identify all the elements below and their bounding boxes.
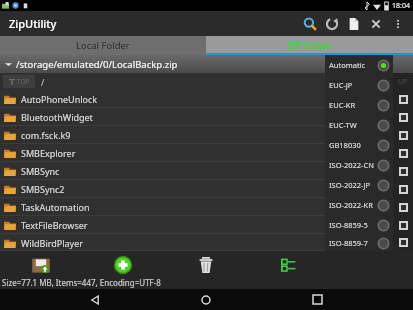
button[interactable]: ISO-8859-7 bbox=[329, 235, 393, 251]
button[interactable]: Automatic bbox=[329, 55, 393, 75]
staticText: ISO-2022-JP bbox=[329, 180, 377, 190]
staticText: ZipUtility bbox=[9, 16, 57, 31]
staticText: GB18030 bbox=[329, 140, 377, 150]
staticText: AutoPhoneUnlock bbox=[21, 93, 98, 105]
button[interactable]: EUC-JP bbox=[329, 75, 393, 95]
button[interactable]: TextFileBrowser bbox=[0, 216, 325, 234]
button[interactable]: SMBSync bbox=[0, 162, 325, 180]
button[interactable]: ISO-2022-JP bbox=[329, 175, 393, 195]
button[interactable]: More options bbox=[387, 13, 409, 35]
staticText: /storage/emulated/0/LocalBackp.zip bbox=[16, 58, 178, 71]
staticText: SMBExplorer bbox=[21, 147, 76, 159]
button[interactable]: EUC-TW bbox=[329, 115, 393, 135]
button[interactable] bbox=[393, 162, 413, 180]
button[interactable]: /storage/emulated/0/LocalBackp.zip bbox=[0, 55, 325, 73]
button[interactable]: Local Folder bbox=[0, 36, 206, 55]
staticText: Local Folder bbox=[76, 39, 130, 52]
button[interactable]: SMBSync2 bbox=[0, 180, 325, 198]
button[interactable]: com.fsck.k9 bbox=[0, 126, 325, 144]
staticText: Size=77.1 MB, Items=447, Encoding=UTF-8 bbox=[2, 277, 161, 288]
staticText: ZIP Folder bbox=[287, 39, 333, 52]
button[interactable]: BluetoothWidget bbox=[0, 108, 325, 126]
staticText: TOP bbox=[17, 77, 30, 86]
staticText: EUC-JP bbox=[329, 80, 377, 90]
button[interactable]: WildBirdPlayer bbox=[0, 234, 325, 251]
button[interactable]: GB18030 bbox=[329, 135, 393, 155]
button[interactable]: UP bbox=[393, 73, 413, 90]
button[interactable]: Back bbox=[80, 289, 110, 310]
button[interactable]: EUC-KR bbox=[329, 95, 393, 115]
button[interactable]: Close bbox=[365, 13, 387, 35]
button[interactable]: SMBExplorer bbox=[0, 144, 325, 162]
button[interactable]: Recents bbox=[302, 289, 332, 310]
button[interactable] bbox=[393, 108, 413, 126]
staticText: EUC-KR bbox=[329, 100, 377, 110]
button[interactable]: Extract bbox=[0, 251, 82, 279]
staticText: ISO-2022-CN bbox=[329, 160, 377, 170]
button[interactable]: AutoPhoneUnlock bbox=[0, 90, 325, 108]
button[interactable]: ISO-2022-CN bbox=[329, 155, 393, 175]
staticText: SMBSync bbox=[21, 165, 60, 177]
button[interactable]: Add bbox=[82, 251, 164, 279]
staticText: SMBSync2 bbox=[21, 183, 65, 195]
staticText: Automatic bbox=[329, 60, 377, 70]
staticText: TextFileBrowser bbox=[21, 219, 88, 231]
button[interactable] bbox=[393, 180, 413, 198]
staticText: 18:04 bbox=[392, 1, 410, 11]
button[interactable]: Select all bbox=[247, 251, 330, 279]
staticText: TaskAutomation bbox=[21, 201, 90, 213]
staticText: ISO-8859-7 bbox=[329, 238, 377, 248]
staticText: / bbox=[41, 76, 45, 88]
button[interactable] bbox=[393, 126, 413, 144]
button[interactable] bbox=[393, 198, 413, 216]
button[interactable]: New file bbox=[343, 13, 365, 35]
staticText: ISO-2022-KR bbox=[329, 200, 377, 210]
staticText: BluetoothWidget bbox=[21, 111, 93, 123]
button[interactable]: TOP bbox=[3, 75, 35, 88]
button[interactable] bbox=[393, 90, 413, 108]
button[interactable]: Home bbox=[191, 289, 221, 310]
staticText: UP bbox=[398, 77, 408, 87]
staticText: EUC-TW bbox=[329, 120, 377, 130]
button[interactable]: ISO-2022-KR bbox=[329, 195, 393, 215]
staticText: WildBirdPlayer bbox=[21, 237, 83, 249]
button[interactable] bbox=[393, 216, 413, 234]
button[interactable]: ISO-8859-5 bbox=[329, 215, 393, 235]
button[interactable]: ZIP Folder bbox=[206, 36, 413, 55]
button[interactable]: Delete bbox=[164, 251, 247, 279]
staticText: com.fsck.k9 bbox=[21, 129, 71, 141]
button[interactable]: Refresh bbox=[321, 13, 343, 35]
button[interactable]: TaskAutomation bbox=[0, 198, 325, 216]
staticText: ISO-8859-5 bbox=[329, 220, 377, 230]
button[interactable] bbox=[393, 234, 413, 251]
button[interactable] bbox=[393, 144, 413, 162]
button[interactable]: Search bbox=[299, 13, 321, 35]
